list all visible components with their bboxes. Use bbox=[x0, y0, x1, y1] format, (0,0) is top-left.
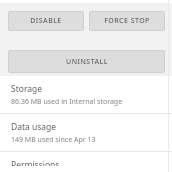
button[interactable]: UNINSTALL bbox=[8, 50, 165, 73]
button[interactable]: FORCE STOP bbox=[89, 11, 165, 31]
button[interactable]: DISABLE bbox=[8, 11, 84, 31]
button[interactable]: Permissions bbox=[0, 152, 172, 172]
staticText: Permissions bbox=[11, 159, 60, 166]
staticText: UNINSTALL bbox=[66, 57, 108, 67]
button[interactable]: Storage bbox=[0, 76, 172, 113]
staticText: 149 MB used since Apr 13 bbox=[11, 135, 96, 145]
staticText: Data usage bbox=[11, 121, 57, 133]
staticText: 86.36 MB used in Internal storage bbox=[11, 97, 123, 107]
staticText: DISABLE bbox=[30, 16, 62, 26]
staticText: Storage bbox=[11, 83, 43, 95]
staticText: FORCE STOP bbox=[104, 16, 150, 26]
button[interactable]: Data usage bbox=[0, 114, 172, 151]
